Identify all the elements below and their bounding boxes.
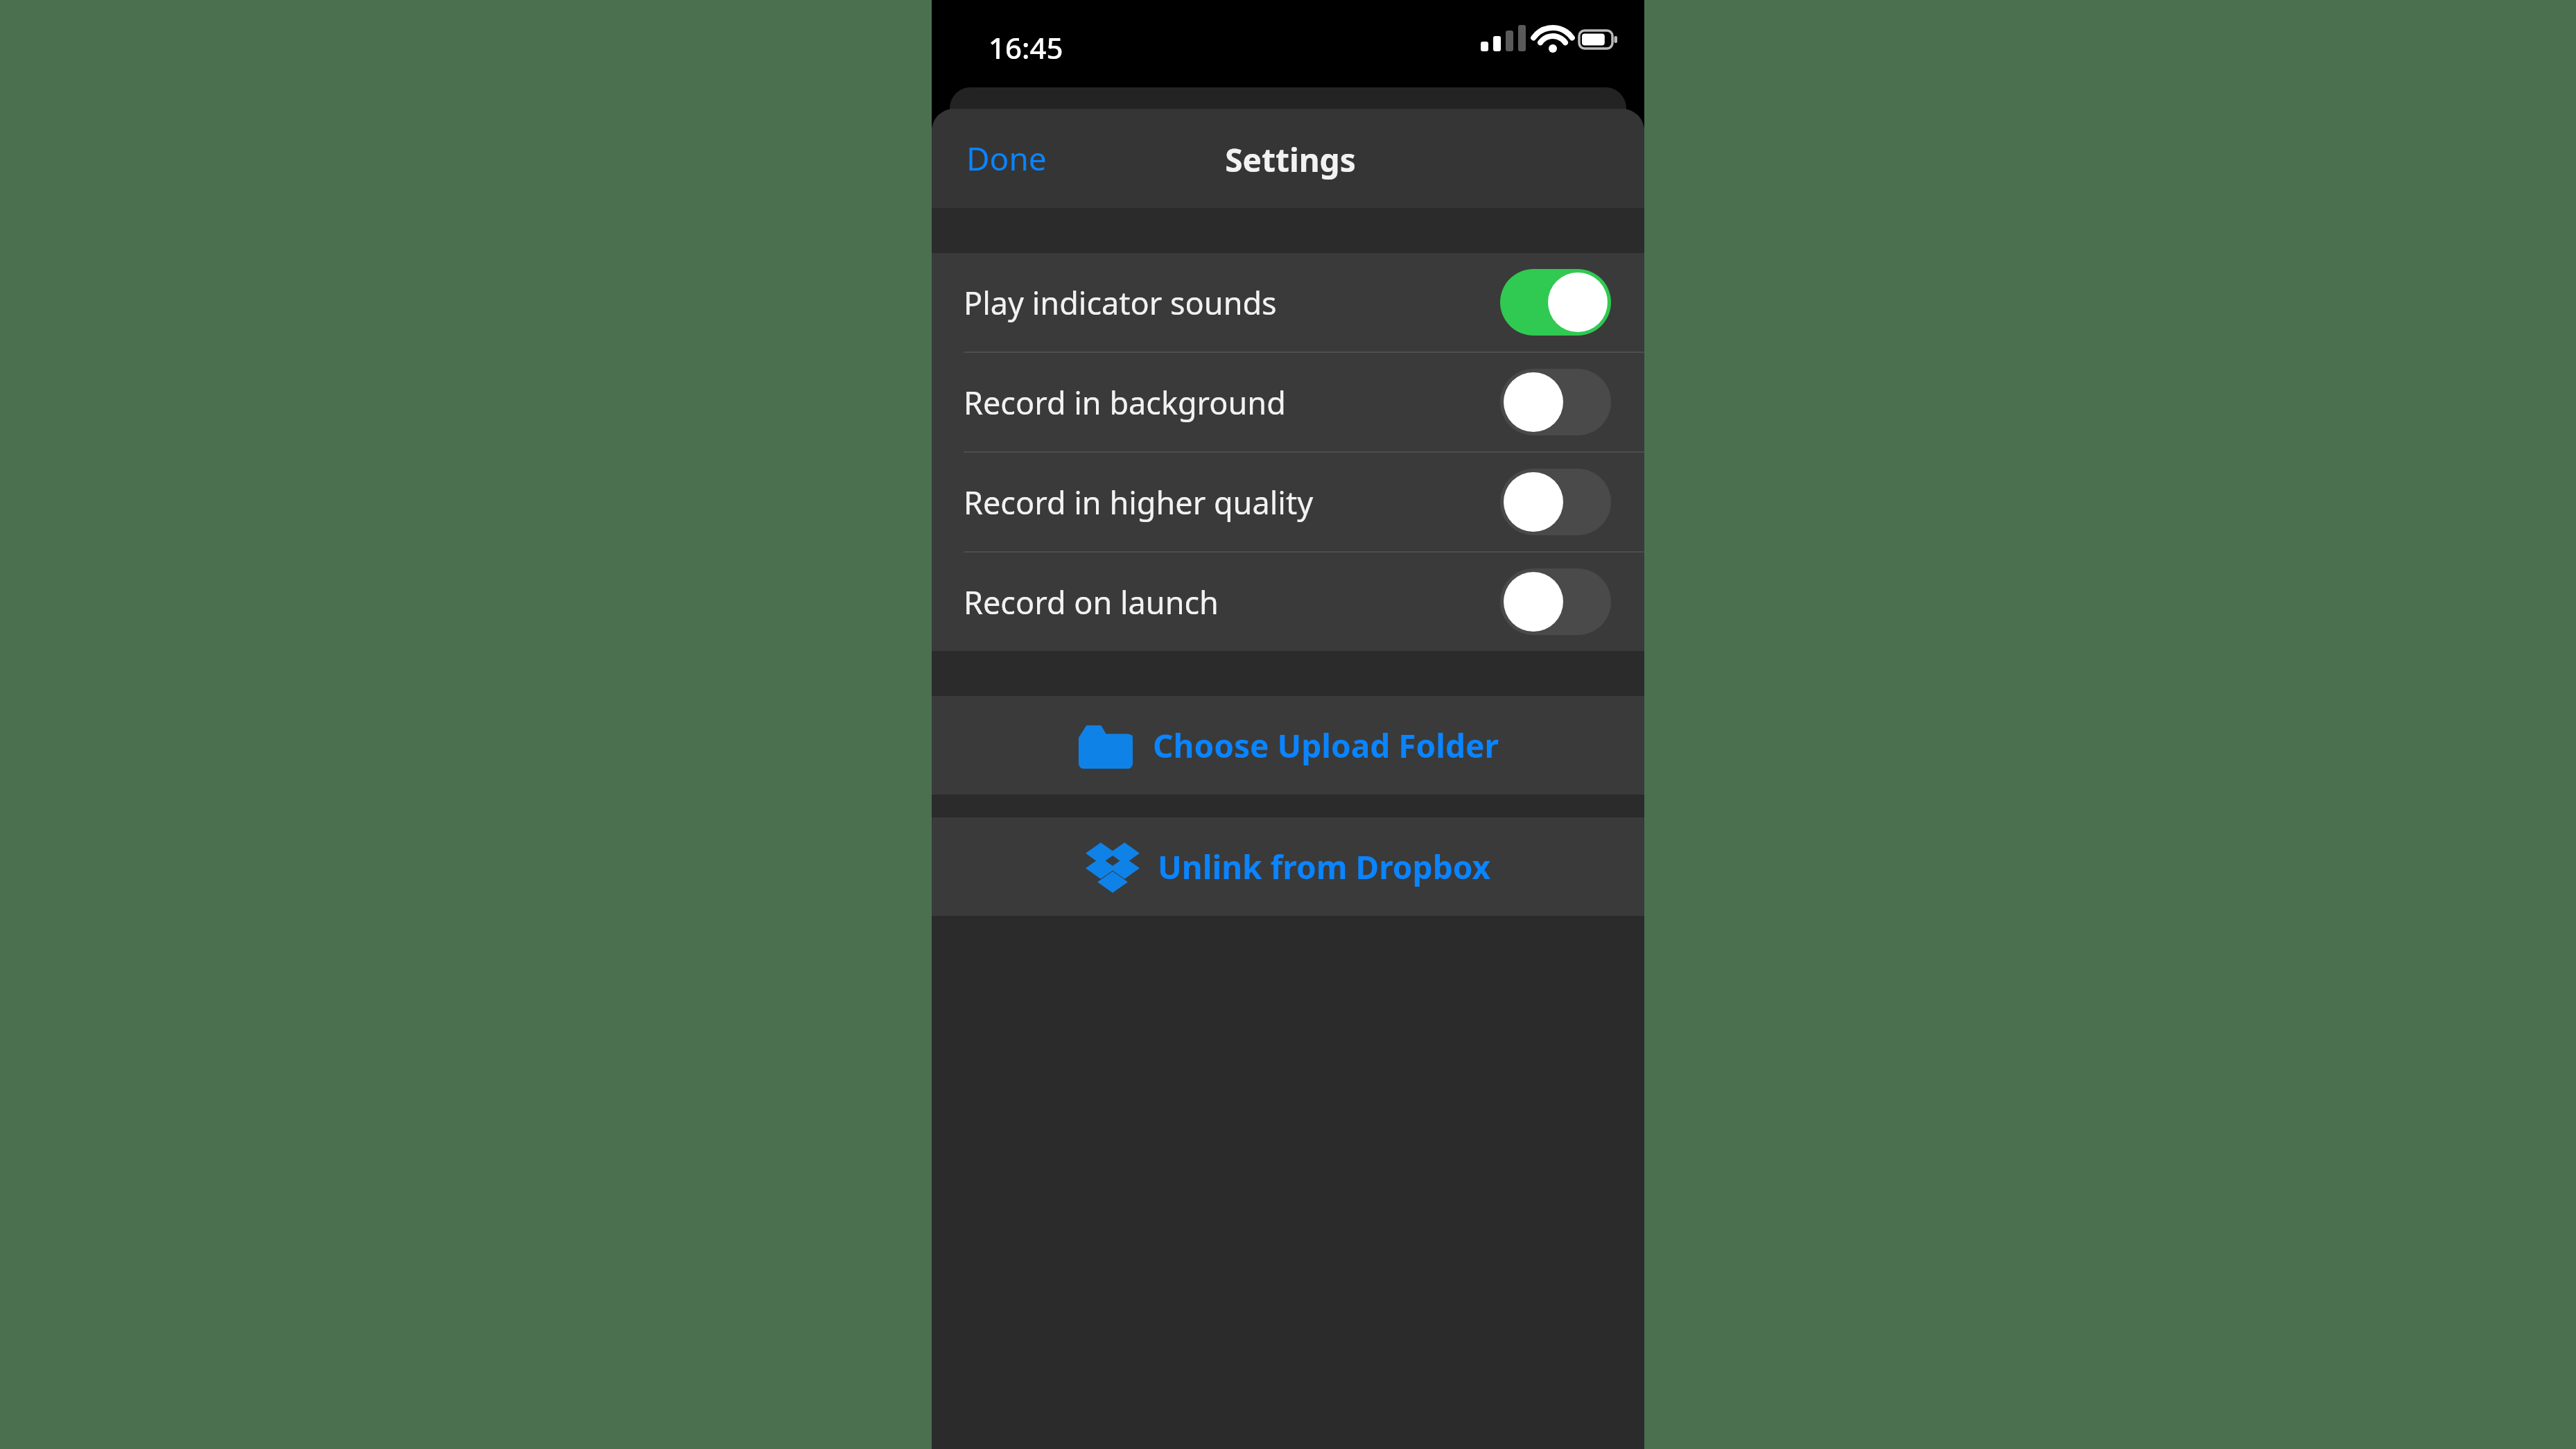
button[interactable]: Folder <box>932 696 1644 795</box>
other: Folder <box>1077 720 1135 770</box>
staticText: Done <box>966 137 1047 180</box>
button[interactable]: Dropbox <box>932 817 1644 916</box>
other: On <box>1500 269 1611 336</box>
other: Off <box>1500 369 1611 435</box>
staticText: 16:45 <box>989 28 1063 67</box>
other: Off <box>1500 469 1611 535</box>
staticText: Choose Upload Folder <box>1153 724 1499 767</box>
button[interactable]: Record in background <box>932 353 1644 451</box>
staticText: Unlink from Dropbox <box>1158 845 1491 889</box>
other: Off <box>1500 569 1611 635</box>
staticText: Record in higher quality <box>964 481 1500 523</box>
staticText: Play indicator sounds <box>964 281 1500 324</box>
staticText: Record in background <box>964 381 1500 424</box>
button[interactable]: Done <box>952 127 1061 190</box>
button[interactable]: Record on launch <box>932 553 1644 651</box>
button[interactable]: Record in higher quality <box>932 453 1644 551</box>
staticText: Record on launch <box>964 581 1500 623</box>
other: Dropbox <box>1086 841 1140 892</box>
button[interactable]: Play indicator sounds <box>932 253 1644 352</box>
staticText: Settings <box>1225 138 1356 182</box>
